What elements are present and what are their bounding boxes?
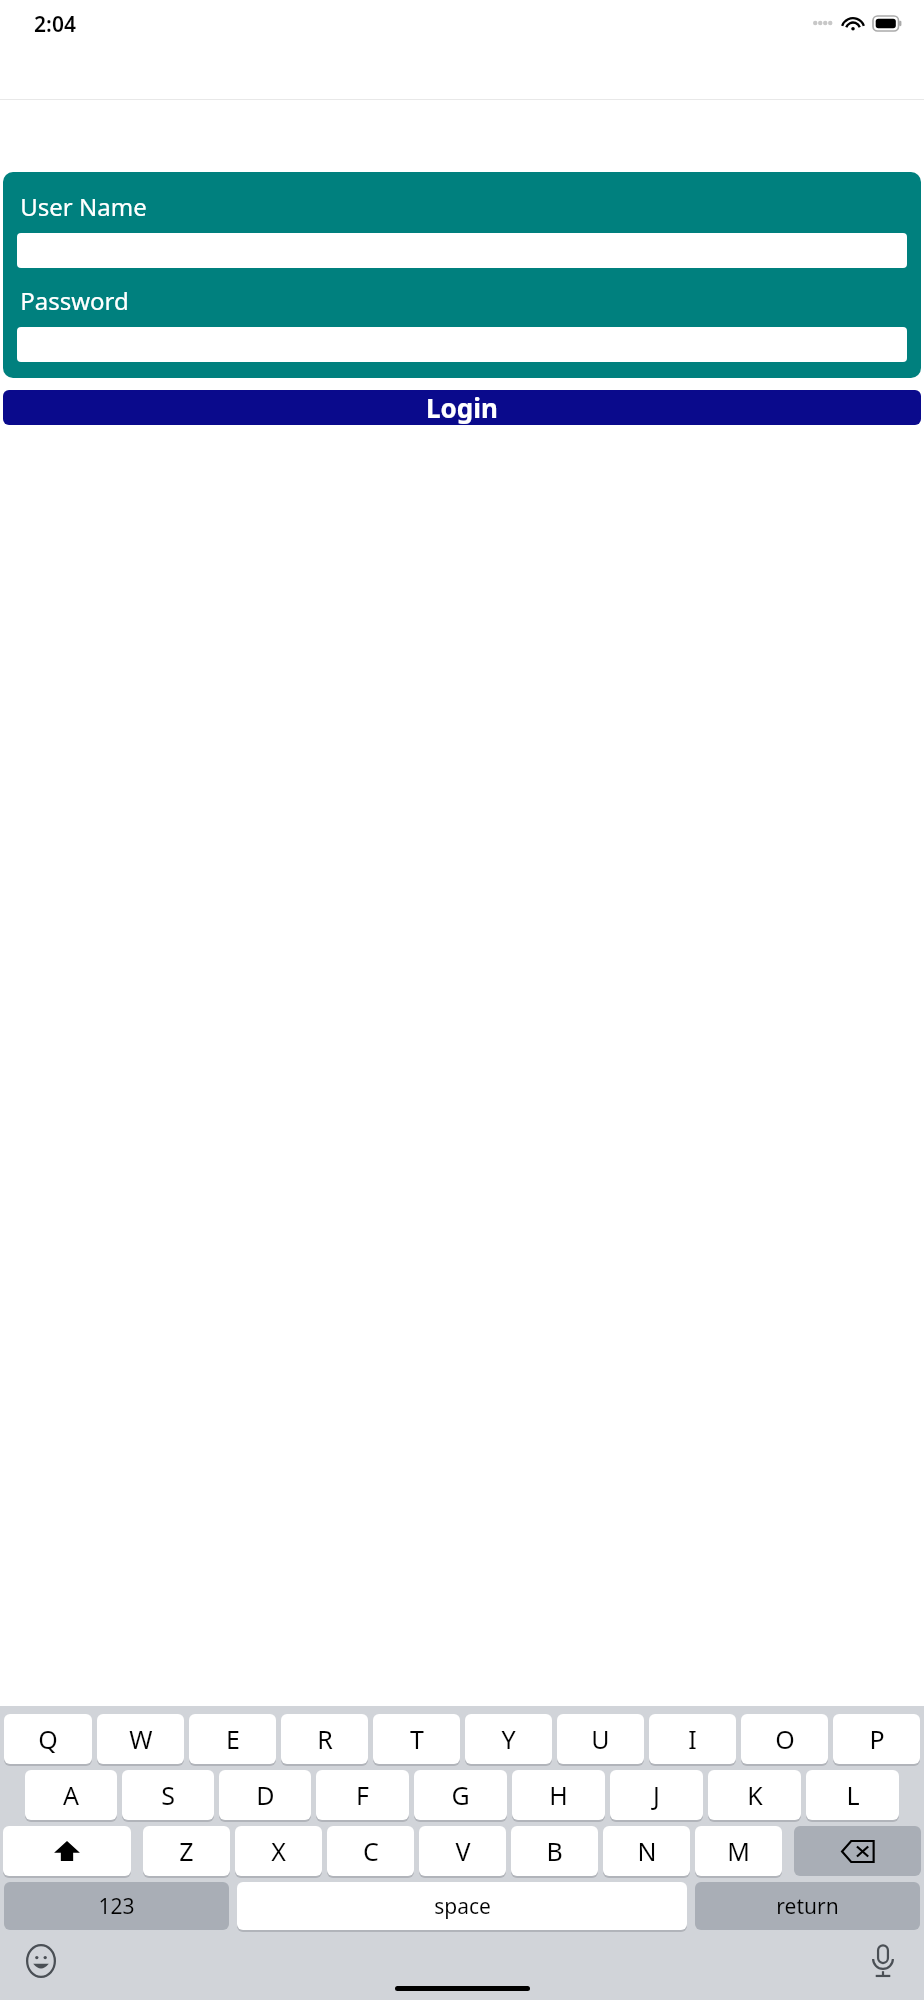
button[interactable]: return: [695, 1882, 920, 1930]
button[interactable]: Backspace: [794, 1826, 921, 1876]
button[interactable]: P: [833, 1714, 920, 1764]
button[interactable]: W: [97, 1714, 184, 1764]
button[interactable]: B: [511, 1826, 598, 1876]
staticText: L: [846, 1778, 860, 1812]
staticText: S: [161, 1778, 175, 1812]
button[interactable]: J: [610, 1770, 703, 1820]
staticText: D: [256, 1778, 275, 1812]
button[interactable]: H: [512, 1770, 605, 1820]
button[interactable]: K: [708, 1770, 801, 1820]
staticText: Password: [20, 284, 129, 317]
button[interactable]: [17, 233, 907, 268]
button[interactable]: Emoji: [22, 1942, 60, 1980]
staticText: B: [546, 1834, 563, 1868]
staticText: C: [363, 1834, 379, 1868]
staticText: A: [63, 1778, 79, 1812]
button[interactable]: M: [695, 1826, 782, 1876]
button[interactable]: O: [741, 1714, 828, 1764]
button[interactable]: I: [649, 1714, 736, 1764]
button[interactable]: Shift: [3, 1826, 131, 1876]
button[interactable]: Login: [3, 390, 921, 425]
staticText: 123: [98, 1892, 135, 1921]
button[interactable]: F: [316, 1770, 409, 1820]
staticText: X: [271, 1834, 286, 1868]
staticText: N: [637, 1834, 657, 1868]
staticText: F: [356, 1778, 369, 1812]
button[interactable]: L: [806, 1770, 899, 1820]
button[interactable]: V: [419, 1826, 506, 1876]
staticText: O: [775, 1722, 795, 1756]
button[interactable]: U: [557, 1714, 644, 1764]
button[interactable]: Dictation: [864, 1942, 902, 1980]
staticText: E: [226, 1722, 240, 1756]
button[interactable]: A: [25, 1770, 117, 1820]
staticText: Z: [179, 1834, 194, 1868]
staticText: return: [776, 1892, 839, 1921]
button[interactable]: G: [414, 1770, 507, 1820]
staticText: K: [747, 1778, 763, 1812]
button[interactable]: Y: [465, 1714, 552, 1764]
button[interactable]: Q: [4, 1714, 92, 1764]
staticText: Q: [38, 1722, 58, 1756]
staticText: P: [869, 1722, 885, 1756]
button[interactable]: E: [189, 1714, 276, 1764]
button[interactable]: X: [235, 1826, 322, 1876]
staticText: T: [410, 1722, 424, 1756]
button[interactable]: D: [219, 1770, 311, 1820]
staticText: 2:04: [34, 10, 76, 39]
staticText: R: [317, 1722, 333, 1756]
staticText: V: [455, 1834, 471, 1868]
button[interactable]: Z: [143, 1826, 230, 1876]
button[interactable]: T: [373, 1714, 460, 1764]
button[interactable]: C: [327, 1826, 414, 1876]
staticText: User Name: [20, 190, 147, 223]
button[interactable]: space: [237, 1882, 687, 1930]
staticText: U: [591, 1722, 610, 1756]
staticText: W: [129, 1722, 153, 1756]
button[interactable]: R: [281, 1714, 368, 1764]
button[interactable]: S: [122, 1770, 214, 1820]
staticText: M: [727, 1834, 750, 1868]
staticText: J: [653, 1778, 660, 1812]
staticText: Y: [501, 1722, 516, 1756]
button[interactable]: N: [603, 1826, 690, 1876]
button[interactable]: 123: [4, 1882, 229, 1930]
staticText: H: [549, 1778, 568, 1812]
button[interactable]: [17, 327, 907, 362]
staticText: G: [451, 1778, 470, 1812]
staticText: I: [688, 1722, 697, 1756]
staticText: Login: [426, 390, 498, 425]
staticText: space: [434, 1892, 491, 1921]
